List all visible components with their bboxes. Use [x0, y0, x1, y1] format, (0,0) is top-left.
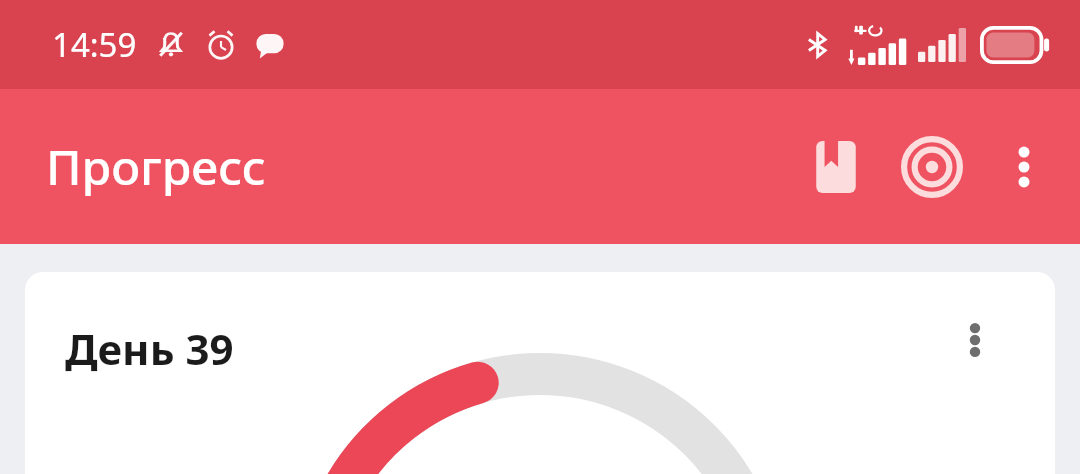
button[interactable]: Меню карточки: [945, 310, 1005, 370]
button[interactable]: Дневник: [788, 119, 884, 215]
staticText: День 39: [65, 320, 234, 377]
staticText: 14:59: [52, 22, 137, 67]
button[interactable]: Цель: [884, 119, 980, 215]
button[interactable]: День 39: [25, 272, 1055, 474]
button[interactable]: Ещё: [980, 123, 1068, 211]
staticText: Прогресс: [46, 134, 266, 199]
